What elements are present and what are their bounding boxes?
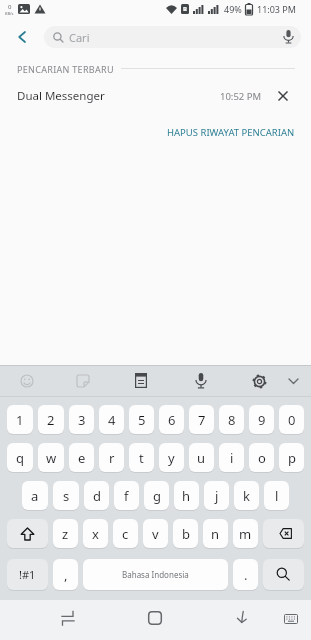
button[interactable]: b xyxy=(173,519,198,548)
button[interactable]: h xyxy=(174,481,199,510)
staticText: k xyxy=(243,487,250,505)
button[interactable] xyxy=(135,373,147,388)
button[interactable]: r xyxy=(99,443,124,472)
staticText: j xyxy=(215,487,219,505)
button[interactable]: 1 xyxy=(7,405,33,434)
button[interactable] xyxy=(263,519,304,548)
button[interactable]: v xyxy=(143,519,168,548)
staticText: e xyxy=(78,449,86,467)
button[interactable]: n xyxy=(203,519,228,548)
button[interactable] xyxy=(252,374,267,389)
staticText: 8 xyxy=(228,411,236,429)
button[interactable] xyxy=(76,374,90,388)
staticText: 6 xyxy=(168,411,176,429)
staticText: 0 xyxy=(8,3,12,11)
staticText: u xyxy=(197,449,206,467)
staticText: r xyxy=(109,449,115,467)
button[interactable]: g xyxy=(144,481,169,510)
button[interactable]: t xyxy=(129,443,154,472)
staticText: a xyxy=(31,487,39,505)
staticText: d xyxy=(93,487,101,505)
staticText: p xyxy=(288,449,296,467)
staticText: o xyxy=(258,449,266,467)
button[interactable] xyxy=(7,519,48,548)
button[interactable]: Dual Messenger xyxy=(0,82,311,110)
staticText: c xyxy=(122,525,129,543)
staticText: KB/s xyxy=(5,11,14,16)
staticText: b xyxy=(182,525,190,543)
staticText: f xyxy=(124,487,129,505)
button[interactable]: Bahasa Indonesia xyxy=(83,559,228,590)
button[interactable]: 6 xyxy=(159,405,184,434)
button[interactable]: p xyxy=(279,443,304,472)
staticText: z xyxy=(62,525,69,543)
button[interactable]: o xyxy=(249,443,274,472)
staticText: 4 xyxy=(108,411,116,429)
button[interactable]: m xyxy=(233,519,258,548)
button[interactable]: 5 xyxy=(129,405,154,434)
button[interactable]: 2 xyxy=(38,405,64,434)
staticText: m xyxy=(239,525,252,543)
button[interactable]: u xyxy=(189,443,214,472)
staticText: 0 xyxy=(288,411,296,429)
staticText: g xyxy=(153,487,161,505)
button[interactable]: j xyxy=(204,481,229,510)
staticText: , xyxy=(64,566,68,584)
staticText: w xyxy=(46,449,57,467)
button[interactable]: f xyxy=(114,481,139,510)
button[interactable] xyxy=(60,610,76,626)
button[interactable]: , xyxy=(53,559,78,590)
button[interactable] xyxy=(148,611,162,625)
button[interactable]: z xyxy=(53,519,78,548)
staticText: Dual Messenger xyxy=(17,88,105,104)
staticText: 9 xyxy=(258,411,266,429)
button[interactable]: Cari xyxy=(44,26,301,48)
button[interactable]: 7 xyxy=(189,405,214,434)
button[interactable] xyxy=(263,559,304,590)
button[interactable] xyxy=(10,25,34,49)
button[interactable]: !#1 xyxy=(7,559,48,590)
button[interactable] xyxy=(284,614,298,624)
staticText: . xyxy=(244,566,248,584)
staticText: x xyxy=(92,525,99,543)
button[interactable]: w xyxy=(38,443,64,472)
button[interactable]: 0 xyxy=(279,405,304,434)
button[interactable] xyxy=(275,88,291,104)
staticText: v xyxy=(152,525,159,543)
staticText: h xyxy=(182,487,191,505)
button[interactable]: HAPUS RIWAYAT PENCARIAN xyxy=(167,126,295,139)
button[interactable]: k xyxy=(234,481,259,510)
staticText: t xyxy=(139,449,144,467)
button[interactable]: e xyxy=(69,443,94,472)
button[interactable]: . xyxy=(233,559,258,590)
button[interactable]: 3 xyxy=(69,405,94,434)
staticText: 10:52 PM xyxy=(220,90,262,103)
staticText: l xyxy=(275,487,279,505)
staticText: s xyxy=(63,487,70,505)
staticText: 11:03 PM xyxy=(257,3,296,15)
button[interactable] xyxy=(236,611,248,624)
button[interactable]: i xyxy=(219,443,244,472)
button[interactable]: s xyxy=(53,481,79,510)
button[interactable] xyxy=(20,374,34,388)
button[interactable]: 8 xyxy=(219,405,244,434)
button[interactable]: c xyxy=(113,519,138,548)
staticText: 3 xyxy=(78,411,86,429)
staticText: PENCARIAN TERBARU xyxy=(17,63,114,75)
staticText: 5 xyxy=(138,411,146,429)
button[interactable] xyxy=(195,373,207,389)
button[interactable]: 4 xyxy=(99,405,124,434)
button[interactable]: y xyxy=(159,443,184,472)
staticText: q xyxy=(16,449,24,467)
button[interactable]: a xyxy=(22,481,48,510)
staticText: B xyxy=(183,5,187,13)
button[interactable]: d xyxy=(84,481,109,510)
button[interactable] xyxy=(288,378,299,385)
button[interactable]: q xyxy=(7,443,33,472)
button[interactable]: 9 xyxy=(249,405,274,434)
staticText: Bahasa Indonesia xyxy=(122,569,189,580)
button[interactable]: x xyxy=(83,519,108,548)
staticText: 7 xyxy=(198,411,206,429)
staticText: 2 xyxy=(47,411,55,429)
button[interactable]: l xyxy=(264,481,289,510)
